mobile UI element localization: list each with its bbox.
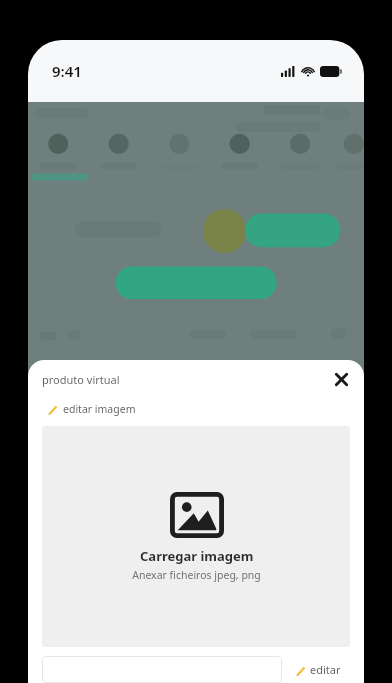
staticText: Anexar ficheiros jpeg, png [132, 568, 261, 582]
button[interactable]: Carregar imagem [42, 426, 350, 647]
staticText: editar [310, 662, 341, 677]
staticText: editar imagem [63, 402, 136, 416]
staticText: Carregar imagem [140, 547, 254, 565]
button[interactable]: Fechar [328, 366, 354, 392]
button[interactable]: editar [294, 656, 341, 683]
staticText: 9:41 [52, 61, 82, 81]
staticText: produto virtual [42, 372, 120, 387]
button[interactable] [42, 656, 282, 683]
button[interactable]: editar imagem [46, 398, 136, 420]
